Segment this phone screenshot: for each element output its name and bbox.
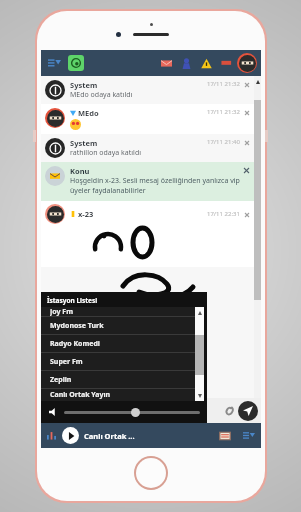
staticText: Super Fm [50,357,83,367]
staticText: İstasyon Listesi [47,296,98,305]
button[interactable]: Flag [218,55,235,72]
staticText: Hoşgeldin x-23. Sesli mesaj özelliğinden… [70,176,242,196]
button[interactable]: Canlı Ortak Yayın [41,389,195,401]
staticText: 17/11 21:40 [207,138,240,146]
button[interactable]: Close [243,139,250,146]
button[interactable]: System [45,80,250,100]
staticText: System [70,80,98,90]
button[interactable]: Menu [45,54,63,72]
button[interactable]: Avatar [45,204,65,224]
button[interactable]: Close [243,109,250,116]
button[interactable]: Close [243,81,250,88]
button[interactable]: Send [238,401,258,421]
staticText: Radyo Komedi [50,339,100,349]
button[interactable]: Messages [158,55,175,72]
staticText: MEdo odaya katıldı [70,90,133,100]
button[interactable]: Play [62,427,79,444]
button[interactable]: Zeplin [41,371,195,388]
staticText: Canlı Ortak Yayın [50,390,111,400]
button[interactable]: Super Fm [41,353,195,370]
staticText: MEdo [78,108,99,118]
button[interactable]: Users [178,55,195,72]
button[interactable]: Equalizer [45,429,58,442]
button[interactable]: Radyo Komedi [41,335,195,352]
button[interactable]: Mute [48,407,58,417]
staticText: System [70,138,98,148]
staticText: Canlı Ortak ... [84,431,135,441]
button[interactable]: Avatar [45,108,250,130]
staticText: 17/11 21:32 [207,108,240,116]
button[interactable]: Menu [240,427,257,444]
button[interactable]: Avatar [45,108,65,128]
staticText: 17/11 21:32 [207,80,240,88]
staticText: x-23 [78,209,94,219]
button[interactable]: Close [243,211,250,218]
button[interactable]: Warnings [198,55,215,72]
staticText: Mydonose Turk [50,321,104,331]
button[interactable]: Avatar [45,204,250,224]
button[interactable]: Joy Fm [41,307,195,316]
button[interactable]: Close [242,166,250,174]
button[interactable]: Konu [45,166,250,196]
staticText: Konu [70,166,90,176]
button[interactable]: Attach [220,402,238,420]
button[interactable]: Volume [64,407,200,417]
button[interactable]: Avatar [237,53,257,73]
button[interactable]: System [45,138,250,158]
button[interactable]: Station list [216,427,233,444]
button[interactable]: Mydonose Turk [41,317,195,334]
button[interactable]: WhatsApp [68,55,84,71]
staticText: Zeplin [50,375,72,385]
staticText: rathillon odaya katıldı [70,148,142,158]
staticText: Joy Fm [50,307,74,316]
staticText: 17/11 22:31 [207,210,240,218]
